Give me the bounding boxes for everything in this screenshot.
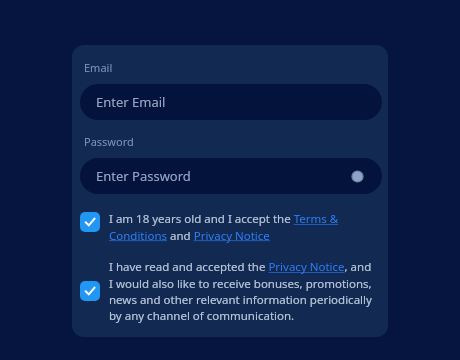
- staticText: Enter Email: [96, 93, 166, 111]
- staticText: Email: [84, 60, 113, 75]
- button[interactable]: Checkbox, checked: [80, 259, 382, 323]
- button[interactable]: Enter Email: [80, 84, 382, 120]
- button[interactable]: Checkbox, checked: [80, 212, 100, 232]
- staticText: I have read and accepted the Privacy Not…: [109, 259, 376, 323]
- button[interactable]: Checkbox, checked: [80, 211, 382, 243]
- staticText: Enter Password: [96, 167, 191, 185]
- button[interactable]: Checkbox, checked: [80, 281, 100, 301]
- button[interactable]: Show password: [348, 167, 366, 185]
- button[interactable]: Enter Password: [80, 158, 382, 194]
- staticText: I am 18 years old and I accept the Terms…: [109, 211, 376, 243]
- staticText: Password: [84, 134, 134, 149]
